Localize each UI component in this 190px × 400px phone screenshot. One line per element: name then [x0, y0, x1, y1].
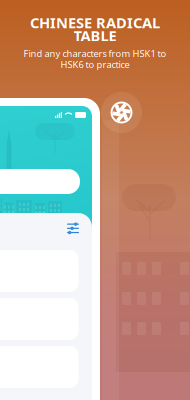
staticText: HSK6 to practice: [60, 58, 129, 71]
button[interactable]: Radical row: [0, 250, 92, 292]
button[interactable]: Aperture: [101, 92, 142, 133]
staticText: TABLE: [73, 26, 116, 45]
button[interactable]: Radical row: [0, 298, 92, 340]
button[interactable]: Filters: [67, 221, 79, 233]
staticText: CHINESE RADICAL: [30, 13, 160, 32]
button[interactable]: Radical row: [0, 346, 92, 388]
button[interactable]: Search: [0, 169, 92, 194]
staticText: Find any characters from HSK1 to: [23, 47, 166, 60]
